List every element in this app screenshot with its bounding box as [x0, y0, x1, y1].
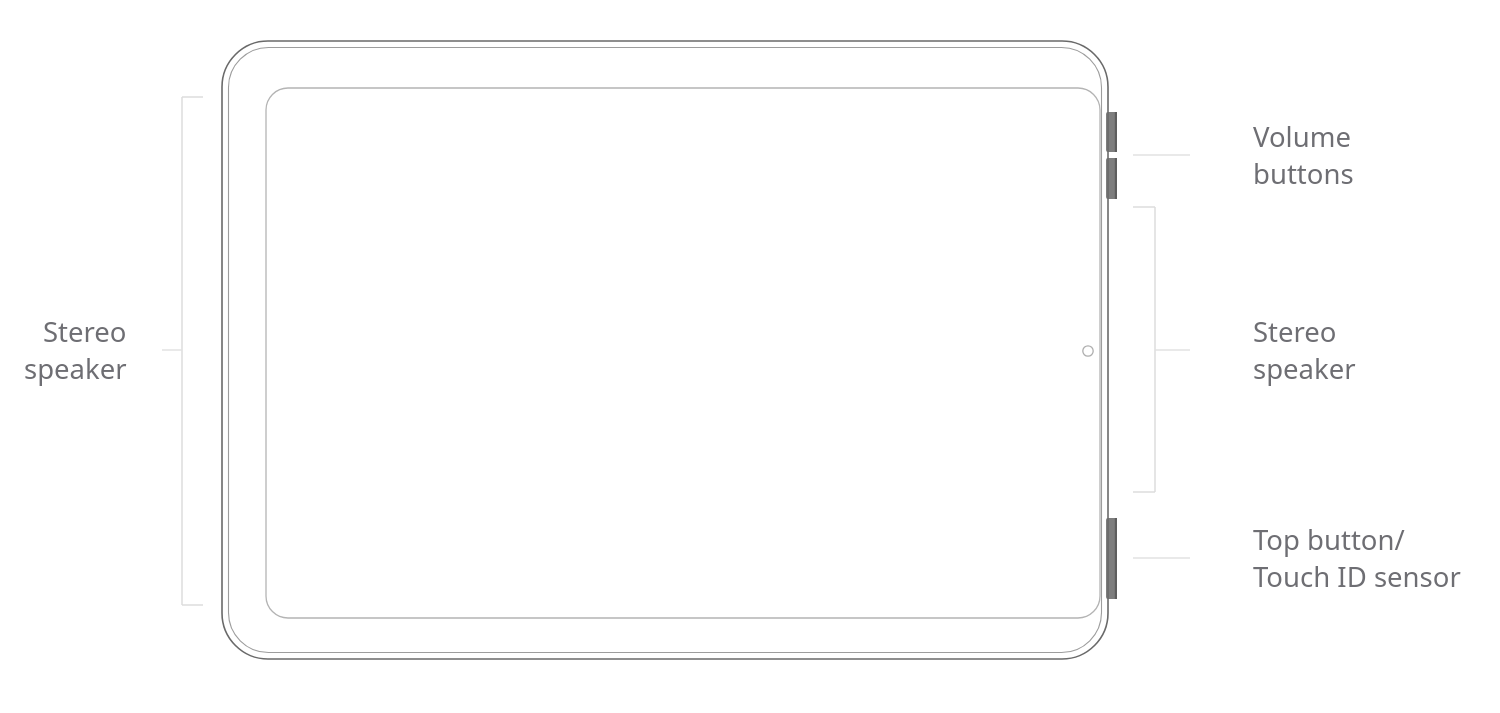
button[interactable]: Tablet illustration [222, 41, 1108, 659]
button[interactable]: Volume buttons [1239, 113, 1479, 197]
button[interactable]: Stereo speaker, left side [0, 308, 200, 392]
button[interactable]: Stereo speaker, right side [1239, 308, 1479, 392]
button[interactable]: Top button, Touch ID sensor [1239, 516, 1499, 600]
